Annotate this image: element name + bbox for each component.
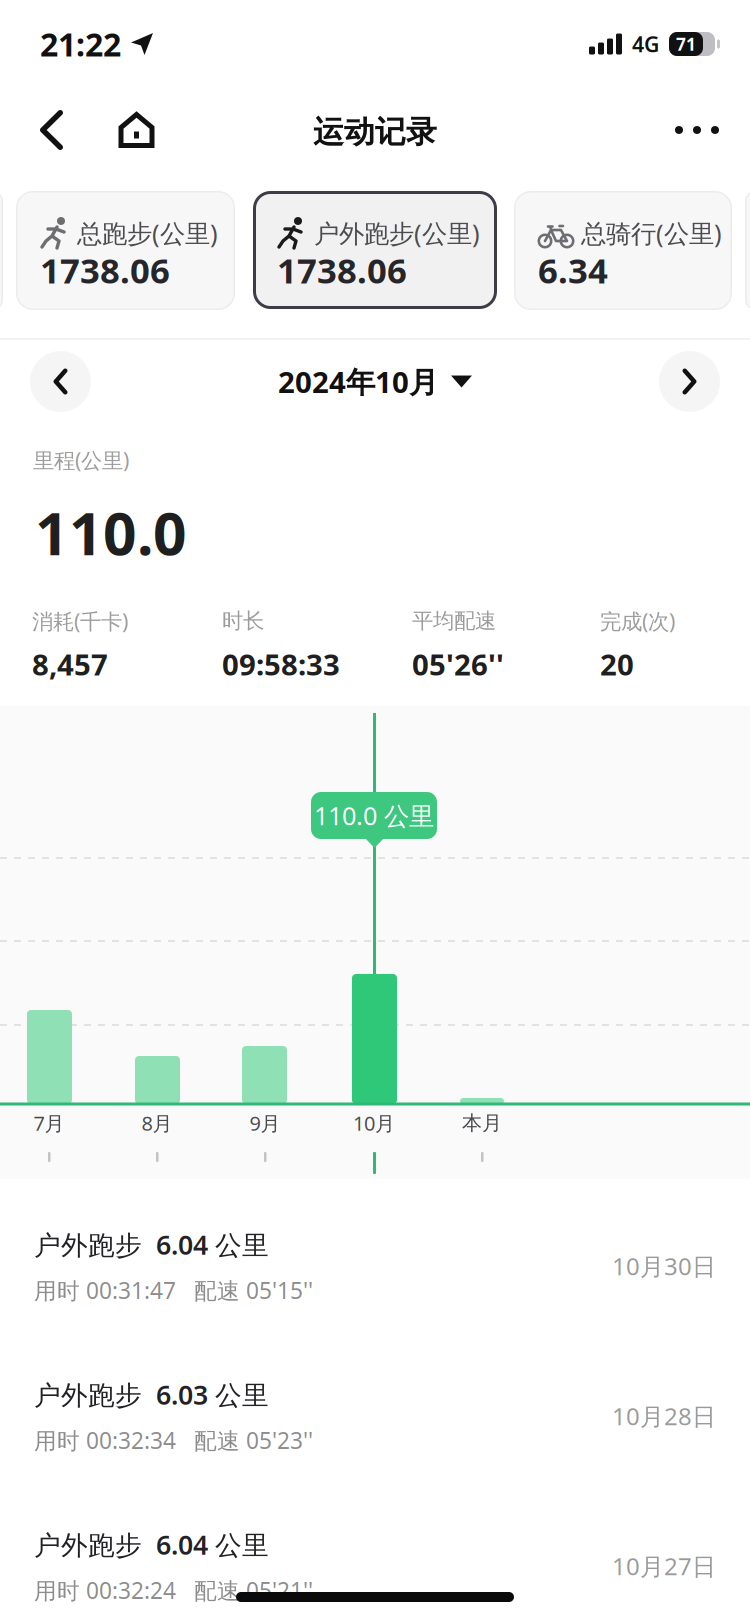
staticText: 2024年10月 <box>278 362 438 401</box>
button[interactable]: 户外跑步 6.04 公里 <box>0 1191 750 1341</box>
staticText: 用时 00:32:24 配速 05'21'' <box>34 1575 313 1605</box>
staticText: 7月 <box>33 1110 64 1136</box>
button[interactable]: Back <box>40 110 63 150</box>
staticText: 4G <box>632 30 659 58</box>
staticText: 10月 <box>353 1110 395 1136</box>
staticText: 8,457 <box>32 644 108 683</box>
staticText: 总骑行(公里) <box>581 216 722 250</box>
staticText: 10月28日 <box>612 1400 716 1432</box>
staticText: 110.0 公里 <box>314 799 434 832</box>
staticText: 71 <box>676 32 696 55</box>
button[interactable]: More <box>675 126 719 134</box>
staticText: 05'26'' <box>412 644 504 683</box>
staticText: 完成(次) <box>600 607 675 635</box>
staticText: 8月 <box>141 1110 172 1136</box>
staticText: 消耗(千卡) <box>32 607 128 635</box>
staticText: 户外跑步 6.04 公里 <box>34 1227 269 1262</box>
staticText: 平均配速 <box>412 608 496 634</box>
staticText: 1738.06 <box>40 247 170 293</box>
staticText: 里程(公里) <box>33 446 129 474</box>
staticText: 21:22 <box>40 23 121 65</box>
staticText: 1738.06 <box>277 247 407 293</box>
staticText: 时长 <box>222 608 264 634</box>
button[interactable]: Home <box>118 111 155 148</box>
staticText: 户外跑步 6.03 公里 <box>34 1377 269 1412</box>
staticText: 20 <box>600 644 634 683</box>
staticText: 10月27日 <box>612 1550 716 1582</box>
button[interactable]: 总骑行(公里) <box>514 191 732 310</box>
staticText: 10月30日 <box>612 1250 716 1282</box>
staticText: 户外跑步(公里) <box>314 216 480 250</box>
staticText: 110.0 <box>35 493 187 571</box>
button[interactable]: 户外跑步 6.04 公里 <box>0 1491 750 1624</box>
staticText: 本月 <box>462 1111 502 1135</box>
staticText: 09:58:33 <box>222 644 340 683</box>
button[interactable]: Next month <box>659 351 720 412</box>
staticText: 运动记录 <box>313 113 437 151</box>
button[interactable]: 户外跑步(公里) <box>253 191 497 309</box>
staticText: 用时 00:32:34 配速 05'23'' <box>34 1425 313 1455</box>
staticText: 6.34 <box>538 247 608 293</box>
button[interactable]: 2024年10月 <box>278 362 472 401</box>
button[interactable]: Previous month <box>30 351 91 412</box>
button[interactable]: 总跑步(公里) <box>16 191 235 310</box>
button[interactable]: 户外跑步 6.03 公里 <box>0 1341 750 1491</box>
staticText: 用时 00:31:47 配速 05'15'' <box>34 1275 313 1305</box>
staticText: 总跑步(公里) <box>77 216 218 250</box>
staticText: 户外跑步 6.04 公里 <box>34 1527 269 1562</box>
staticText: 9月 <box>249 1110 280 1136</box>
